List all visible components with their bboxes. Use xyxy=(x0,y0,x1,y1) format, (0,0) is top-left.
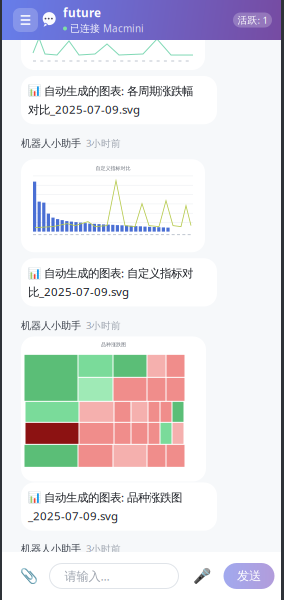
button[interactable]: Menu xyxy=(13,8,38,32)
staticText: 发送 xyxy=(237,568,261,584)
staticText: 品种涨跌图 xyxy=(101,341,126,348)
staticText: 3小时前 xyxy=(86,319,121,332)
staticText: 机器人小助手 xyxy=(21,137,81,150)
staticText: 📊 xyxy=(28,491,41,503)
staticText: 机器人小助手 xyxy=(21,319,81,332)
staticText: future xyxy=(63,5,101,21)
staticText: 请输入... xyxy=(64,568,109,584)
staticText: Macmini xyxy=(103,22,144,35)
staticText: 3小时前 xyxy=(86,542,121,555)
staticText: 3小时前 xyxy=(86,137,121,150)
button[interactable]: Voice input xyxy=(192,564,210,588)
button[interactable]: 📊 xyxy=(21,76,217,124)
button[interactable]: Attach file xyxy=(17,564,39,588)
button[interactable]: 发送 xyxy=(223,563,274,589)
button[interactable]: 📊 xyxy=(21,482,217,531)
staticText: 📊 xyxy=(28,267,41,279)
staticText: 自动生成的图表: 各周期涨跌幅 xyxy=(44,83,193,99)
staticText: 📊 xyxy=(28,85,41,97)
button[interactable]: 📊 xyxy=(21,258,217,306)
staticText: 自动生成的图表: 自定义指标对 xyxy=(44,265,193,281)
staticText: 活跃: 1 xyxy=(237,13,267,27)
button[interactable]: 活跃: 1 xyxy=(233,12,272,27)
staticText: 📎 xyxy=(19,567,37,585)
staticText: _2025-07-09.svg xyxy=(28,508,118,524)
staticText: 自定义指标对比 xyxy=(95,165,130,172)
staticText: 🎤 xyxy=(192,567,210,585)
staticText: 已连接 xyxy=(70,22,100,35)
staticText: 对比_2025-07-09.svg xyxy=(28,102,140,117)
staticText: 比_2025-07-09.svg xyxy=(28,284,129,299)
staticText: 机器人小助手 xyxy=(21,543,81,555)
staticText: 自动生成的图表: 品种涨跌图 xyxy=(44,489,182,505)
